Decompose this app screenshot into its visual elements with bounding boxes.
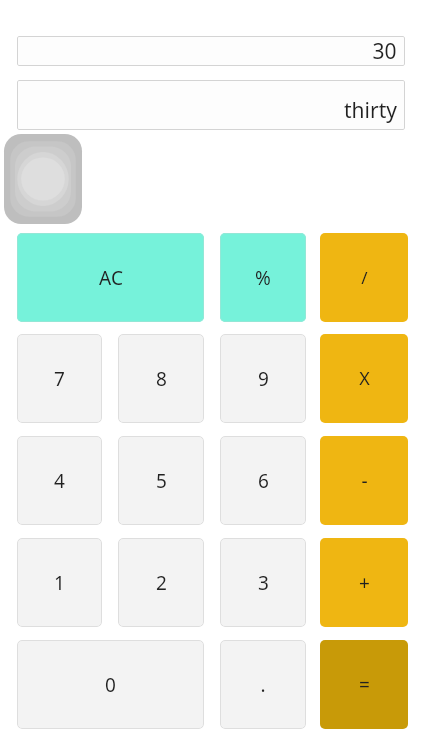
staticText: . <box>260 672 266 698</box>
button[interactable]: % <box>220 233 306 322</box>
staticText: % <box>255 265 271 291</box>
button[interactable]: Options <box>4 134 82 224</box>
button[interactable]: 8 <box>118 334 204 423</box>
staticText: + <box>359 570 370 596</box>
staticText: - <box>361 468 368 494</box>
button[interactable]: 3 <box>220 538 306 627</box>
staticText: 2 <box>156 570 167 596</box>
button[interactable]: Multiply <box>320 334 408 423</box>
staticText: = <box>359 672 370 698</box>
button[interactable]: 1 <box>17 538 102 627</box>
button[interactable]: 0 <box>17 640 204 729</box>
staticText: 30 <box>372 37 397 66</box>
staticText: 7 <box>54 366 65 392</box>
button[interactable]: Equals <box>320 640 408 729</box>
button[interactable]: 4 <box>17 436 102 525</box>
button[interactable]: AC <box>17 233 204 322</box>
staticText: 4 <box>54 468 65 494</box>
button[interactable]: 7 <box>17 334 102 423</box>
button[interactable]: 30 <box>17 36 405 66</box>
staticText: 5 <box>156 468 167 494</box>
staticText: 3 <box>258 570 269 596</box>
staticText: thirty <box>344 96 397 125</box>
staticText: 1 <box>54 570 65 596</box>
staticText: 8 <box>156 366 167 392</box>
button[interactable]: 6 <box>220 436 306 525</box>
button[interactable]: 5 <box>118 436 204 525</box>
staticText: 0 <box>105 672 116 698</box>
staticText: X <box>359 366 370 391</box>
staticText: 6 <box>258 468 269 494</box>
staticText: / <box>361 266 368 289</box>
staticText: AC <box>99 265 123 291</box>
button[interactable]: Plus <box>320 538 408 627</box>
staticText: 9 <box>258 366 269 392</box>
button[interactable]: Divide <box>320 233 408 322</box>
button[interactable]: 9 <box>220 334 306 423</box>
button[interactable]: 2 <box>118 538 204 627</box>
button[interactable]: . <box>220 640 306 729</box>
button[interactable]: Minus <box>320 436 408 525</box>
button[interactable]: thirty <box>17 80 405 130</box>
